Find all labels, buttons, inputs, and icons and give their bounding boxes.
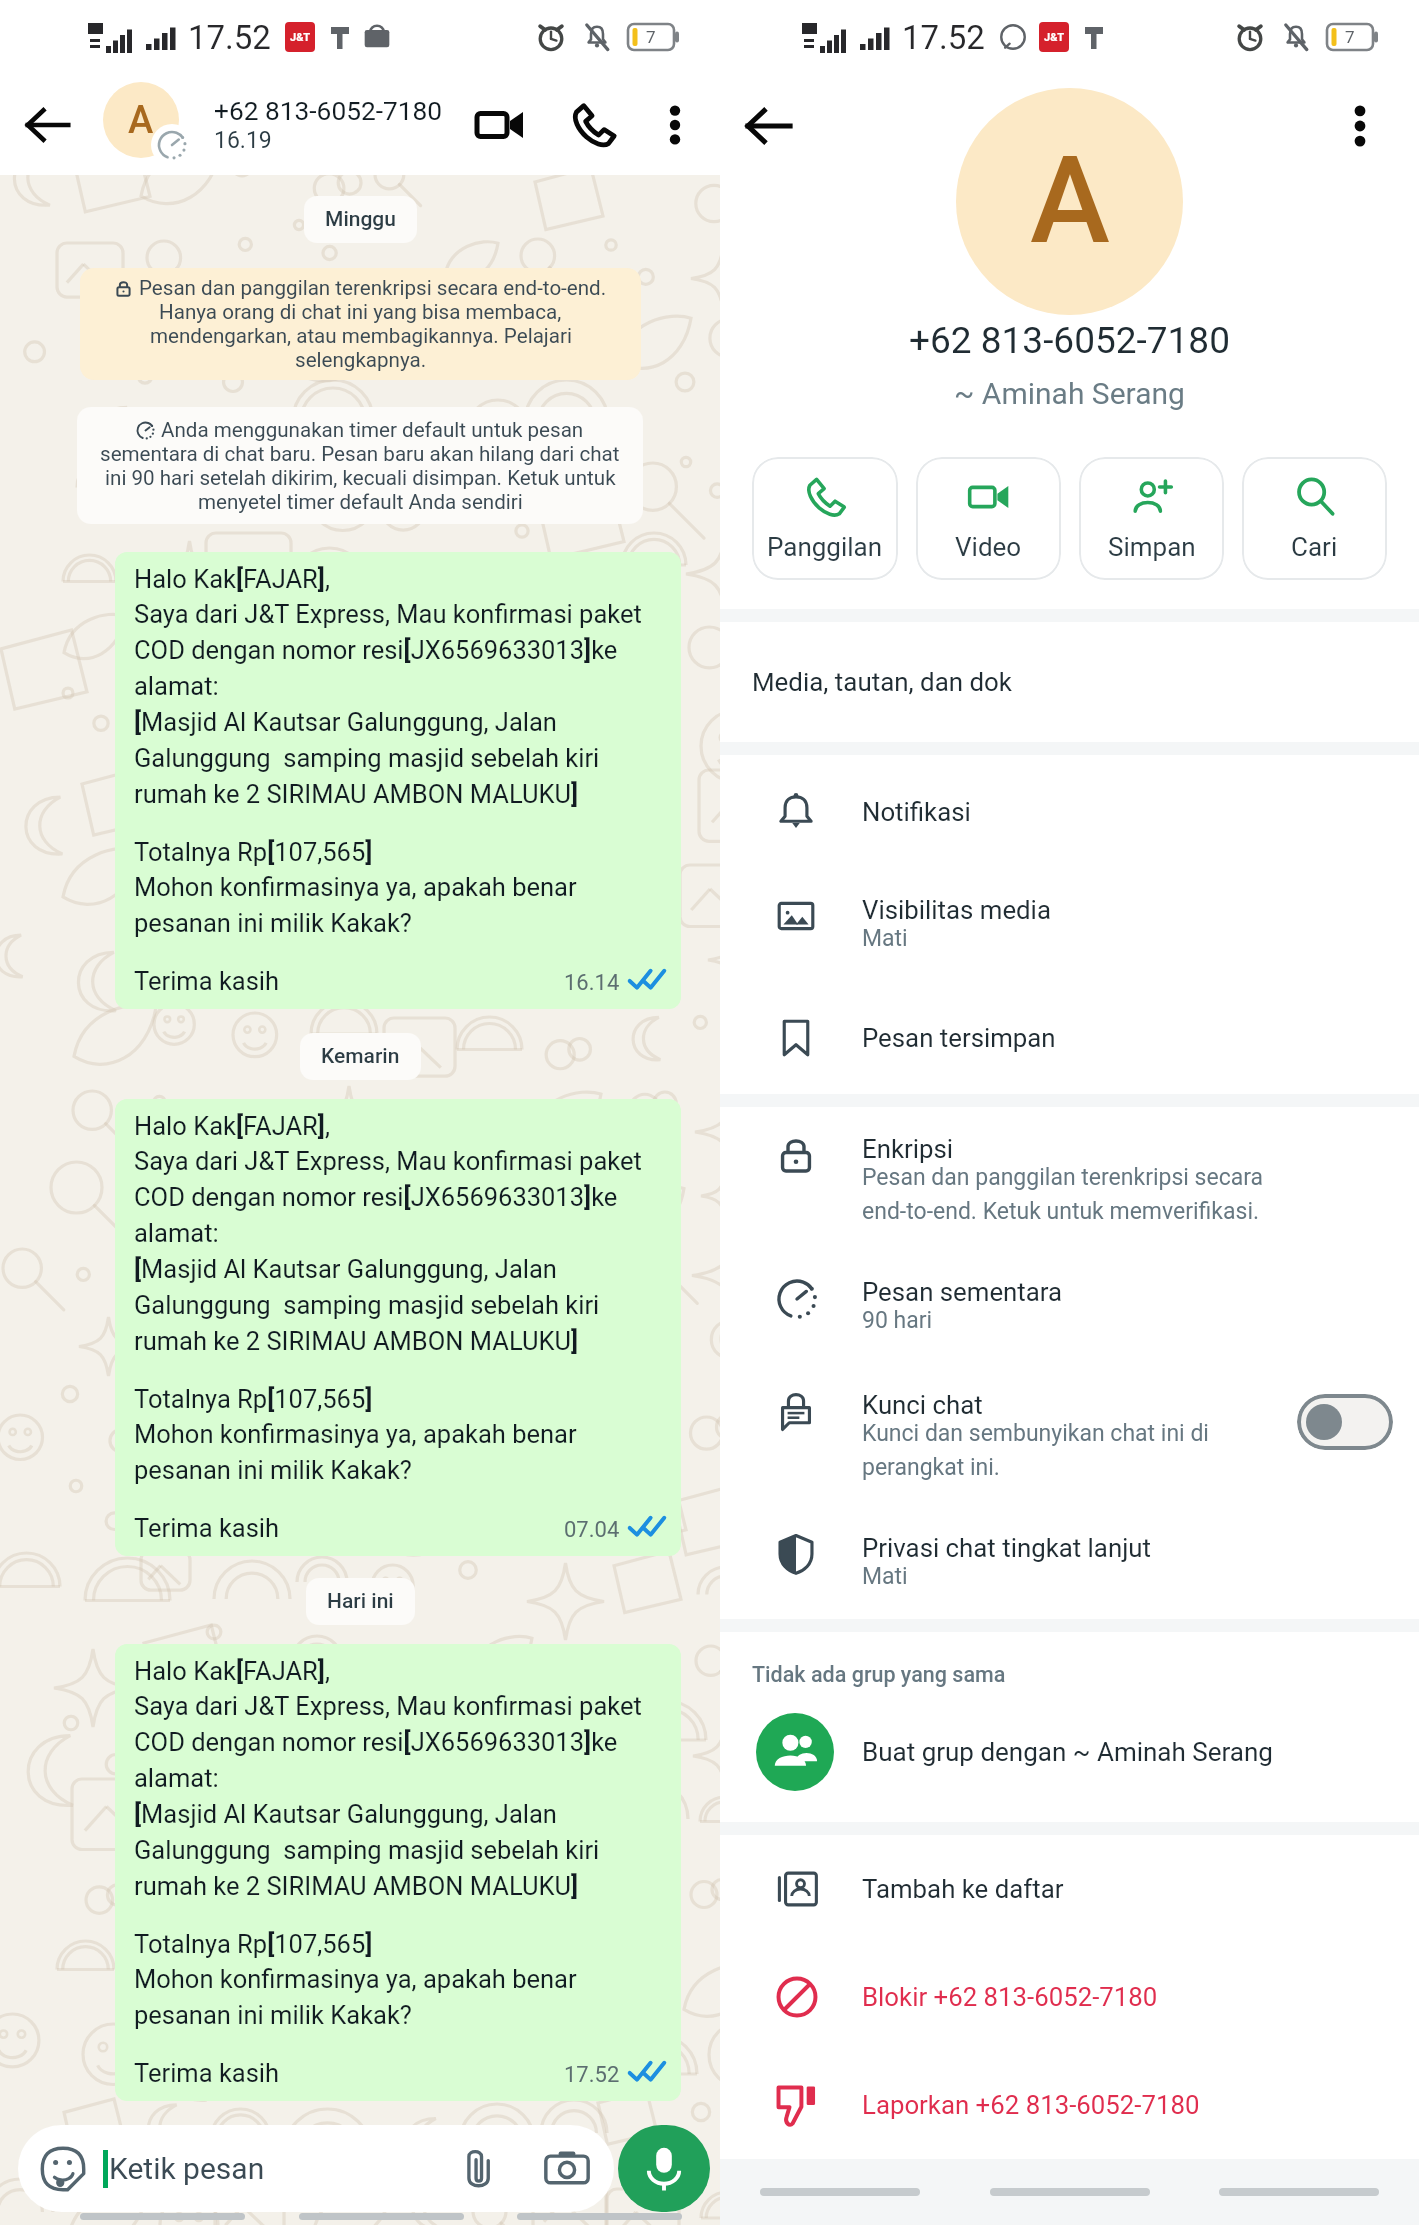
staticText: Tambah ke daftar [862, 1874, 1064, 1904]
staticText: Enkripsi [862, 1134, 954, 1164]
staticText: J&T [290, 31, 311, 44]
staticText: Simpan [1108, 532, 1196, 562]
staticText: Halo Kak[FAJAR], Saya dari J&T Express, … [134, 1111, 642, 1357]
staticText: Pesan dan panggilan terenkripsi secara e… [862, 1164, 1264, 1225]
staticText: Blokir +62 813-6052-7180 [862, 1982, 1158, 2012]
staticText: Hanya orang di chat ini yang bisa membac… [159, 300, 562, 324]
staticText: Notifikasi [862, 797, 971, 827]
button[interactable]: Visibilitas media [720, 868, 1419, 981]
staticText: Tidak ada grup yang sama [752, 1662, 1006, 1687]
button[interactable]: Video call [462, 87, 538, 163]
button[interactable]: Kemarin [300, 1033, 421, 1080]
button[interactable]: More options [1325, 91, 1395, 161]
staticText: Halo Kak[FAJAR], Saya dari J&T Express, … [134, 1656, 642, 1902]
button[interactable]: Laporkan +62 813-6052-7180 [720, 2051, 1419, 2159]
staticText: Terima kasih [134, 2058, 280, 2088]
staticText: mendengarkan, atau membagikannya. Pelaja… [150, 324, 572, 348]
button[interactable]: Media, tautan, dan dok [720, 622, 1419, 742]
staticText: Minggu [325, 207, 396, 232]
staticText: Terima kasih [134, 1513, 280, 1543]
staticText: A [128, 98, 154, 143]
staticText: 16.14 [564, 970, 620, 996]
staticText: Cari [1291, 532, 1338, 562]
button[interactable]: Pesan dan panggilan terenkripsi secara e… [80, 268, 641, 380]
button[interactable]: Voice message [618, 2125, 710, 2212]
staticText: +62 813-6052-7180 [909, 319, 1230, 362]
button[interactable]: Panggilan [752, 457, 898, 580]
button[interactable]: Notifikasi [720, 755, 1419, 868]
button[interactable]: Blokir +62 813-6052-7180 [720, 1943, 1419, 2051]
button[interactable]: Simpan [1079, 457, 1224, 580]
staticText: Kemarin [321, 1044, 400, 1069]
staticText: Panggilan [767, 532, 883, 562]
staticText: Pesan sementara [862, 1277, 1063, 1307]
staticText: sementara di chat baru. Pesan baru akan … [100, 442, 620, 466]
staticText: 17.52 [902, 18, 985, 57]
staticText: Terima kasih [134, 966, 280, 996]
button[interactable]: Halo Kak[FAJAR], Saya dari J&T Express, … [115, 1644, 681, 2101]
staticText: Mati [862, 1563, 908, 1590]
staticText: 90 hari [862, 1307, 933, 1334]
button[interactable]: Tambah ke daftar [720, 1835, 1419, 1943]
button[interactable]: Pesan tersimpan [720, 981, 1419, 1094]
staticText: Kunci chat [862, 1390, 983, 1420]
button[interactable]: Hari ini [306, 1578, 415, 1625]
staticText: Totalnya Rp[107,565] Mohon konfirmasinya… [134, 1929, 577, 2031]
staticText: Ketik pesan [109, 2151, 265, 2186]
staticText: menyetel timer default Anda sendiri [198, 490, 523, 514]
button[interactable]: Kunci chat [720, 1363, 1419, 1506]
staticText: Hari ini [327, 1589, 394, 1614]
staticText: ini 90 hari setelah dikirim, kecuali dis… [105, 466, 616, 490]
button[interactable]: Privasi chat tingkat lanjut [720, 1506, 1419, 1619]
staticText: ~ Aminah Serang [954, 376, 1185, 411]
staticText: +62 813-6052-7180 [214, 96, 443, 127]
staticText: Pesan dan panggilan terenkripsi secara e… [139, 276, 607, 300]
button[interactable]: Enkripsi [720, 1107, 1419, 1250]
staticText: selengkapnya. [295, 348, 427, 372]
staticText: 7 [1345, 27, 1355, 47]
button[interactable]: Halo Kak[FAJAR], Saya dari J&T Express, … [115, 552, 681, 1009]
button[interactable]: Minggu [304, 196, 417, 243]
button[interactable]: Halo Kak[FAJAR], Saya dari J&T Express, … [115, 1099, 681, 1556]
staticText: Pesan tersimpan [862, 1023, 1056, 1053]
button[interactable]: More options [642, 92, 708, 158]
staticText: Video [955, 532, 1022, 562]
staticText: Mati [862, 925, 908, 952]
button[interactable]: Back [14, 91, 82, 159]
button[interactable]: Anda menggunakan timer default untuk pes… [77, 407, 643, 524]
button[interactable]: Call [558, 90, 628, 160]
staticText: Media, tautan, dan dok [752, 667, 1012, 697]
staticText: Totalnya Rp[107,565] Mohon konfirmasinya… [134, 837, 577, 939]
staticText: 07.04 [564, 1517, 620, 1543]
staticText: Totalnya Rp[107,565] Mohon konfirmasinya… [134, 1384, 577, 1486]
staticText: Halo Kak[FAJAR], Saya dari J&T Express, … [134, 564, 642, 810]
staticText: 17.52 [564, 2062, 620, 2088]
staticText: Privasi chat tingkat lanjut [862, 1533, 1151, 1563]
staticText: Visibilitas media [862, 895, 1051, 925]
staticText: 17.52 [188, 18, 271, 57]
staticText: 16.19 [214, 127, 272, 154]
button[interactable]: Back [734, 91, 804, 161]
button[interactable]: Video [916, 457, 1061, 580]
button[interactable]: Cari [1242, 457, 1387, 580]
staticText: Buat grup dengan ~ Aminah Serang [862, 1737, 1273, 1767]
button[interactable]: Buat grup dengan ~ Aminah Serang [720, 1687, 1419, 1817]
staticText: Laporkan +62 813-6052-7180 [862, 2090, 1200, 2120]
button[interactable]: Ketik pesan [18, 2125, 614, 2212]
staticText: 7 [646, 27, 656, 47]
staticText: Kunci dan sembunyikan chat ini di perang… [862, 1420, 1209, 1481]
button[interactable]: Pesan sementara [720, 1250, 1419, 1363]
staticText: A [1030, 131, 1110, 272]
staticText: Anda menggunakan timer default untuk pes… [161, 418, 584, 442]
staticText: J&T [1044, 31, 1065, 44]
